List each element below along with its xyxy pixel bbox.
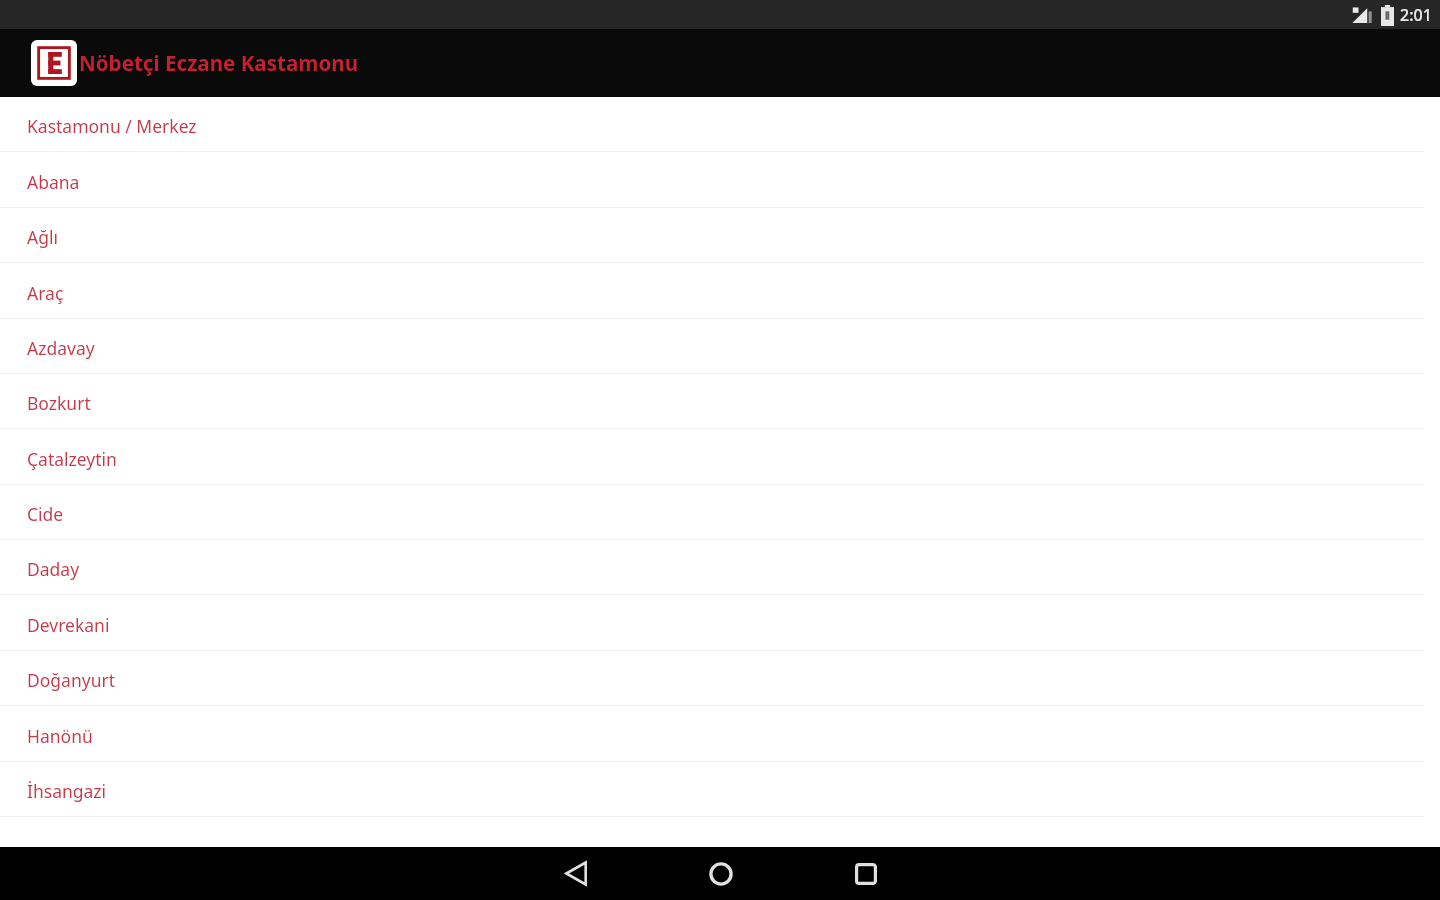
button[interactable]: Devrekani (0, 595, 1440, 651)
staticText: Devrekani (27, 613, 110, 637)
button[interactable]: Home (697, 847, 745, 900)
staticText: İhsangazi (27, 779, 107, 803)
button[interactable]: Back (552, 847, 600, 900)
button[interactable]: Daday (0, 540, 1440, 595)
staticText: Doğanyurt (27, 668, 116, 692)
button[interactable]: Çatalzeytin (0, 429, 1440, 485)
button[interactable]: Kastamonu / Merkez (0, 97, 1440, 152)
staticText: Nöbetçi Eczane Kastamonu (79, 49, 359, 77)
staticText: Çatalzeytin (27, 447, 117, 471)
button[interactable]: Bozkurt (0, 374, 1440, 429)
button[interactable]: Cide (0, 485, 1440, 540)
button[interactable]: İhsangazi (0, 762, 1440, 817)
button[interactable]: Azdavay (0, 319, 1440, 374)
button[interactable]: Araç (0, 263, 1440, 319)
button[interactable]: Abana (0, 152, 1440, 208)
button[interactable]: Doğanyurt (0, 651, 1440, 706)
staticText: Bozkurt (27, 391, 91, 415)
button[interactable]: Hanönü (0, 706, 1440, 762)
button[interactable]: Nöbetçi Eczane Kastamonu (0, 29, 371, 97)
button[interactable]: Ağlı (0, 208, 1440, 263)
button[interactable]: Recents (842, 847, 890, 900)
staticText: Araç (27, 281, 64, 305)
staticText: 2:01 (1400, 4, 1432, 26)
staticText: Azdavay (27, 336, 95, 360)
staticText: Cide (27, 502, 64, 526)
staticText: Hanönü (27, 724, 93, 748)
staticText: Kastamonu / Merkez (27, 114, 197, 138)
staticText: Abana (27, 170, 80, 194)
staticText: Daday (27, 557, 80, 581)
staticText: Ağlı (27, 225, 58, 249)
